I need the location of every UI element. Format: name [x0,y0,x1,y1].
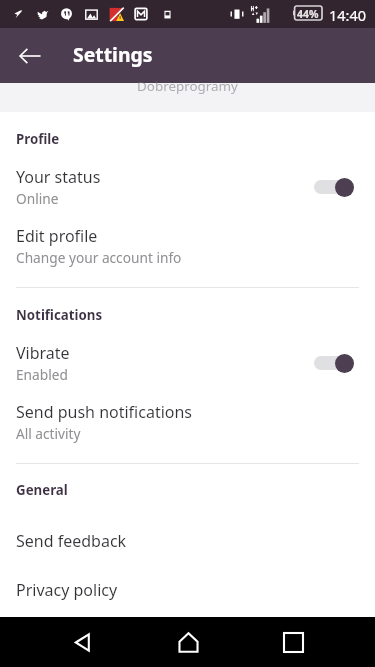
button[interactable]: Privacy policy [0,576,375,620]
staticText: Privacy policy [16,579,118,601]
button[interactable]: Your status [0,163,375,215]
button[interactable]: Home [164,618,212,666]
button[interactable]: Vibrate [0,339,375,391]
button[interactable]: Back [58,618,106,666]
staticText: Send feedback [16,530,127,552]
button[interactable]: Edit profile [0,222,375,274]
staticText: Send push notifications [16,401,193,423]
staticText: General [16,481,68,499]
staticText: Settings [73,41,153,67]
staticText: Vibrate [16,342,70,364]
button[interactable]: Toggle [312,350,356,376]
staticText: 14:40 [329,5,367,25]
button[interactable]: Toggle [312,174,356,200]
button[interactable]: Send feedback [0,527,375,571]
staticText: Notifications [16,306,103,324]
staticText: Online [16,189,59,208]
staticText: Edit profile [16,225,98,247]
button[interactable]: Back [8,34,52,78]
button[interactable]: Recents [269,618,317,666]
button[interactable]: Send push notifications [0,398,375,450]
staticText: 44% [297,7,319,21]
staticText: Your status [16,166,101,188]
staticText: Change your account info [16,248,182,267]
staticText: Profile [16,130,60,148]
staticText: Dobreprogramy [0,77,375,95]
staticText: Enabled [16,365,68,384]
staticText: All activity [16,424,81,443]
